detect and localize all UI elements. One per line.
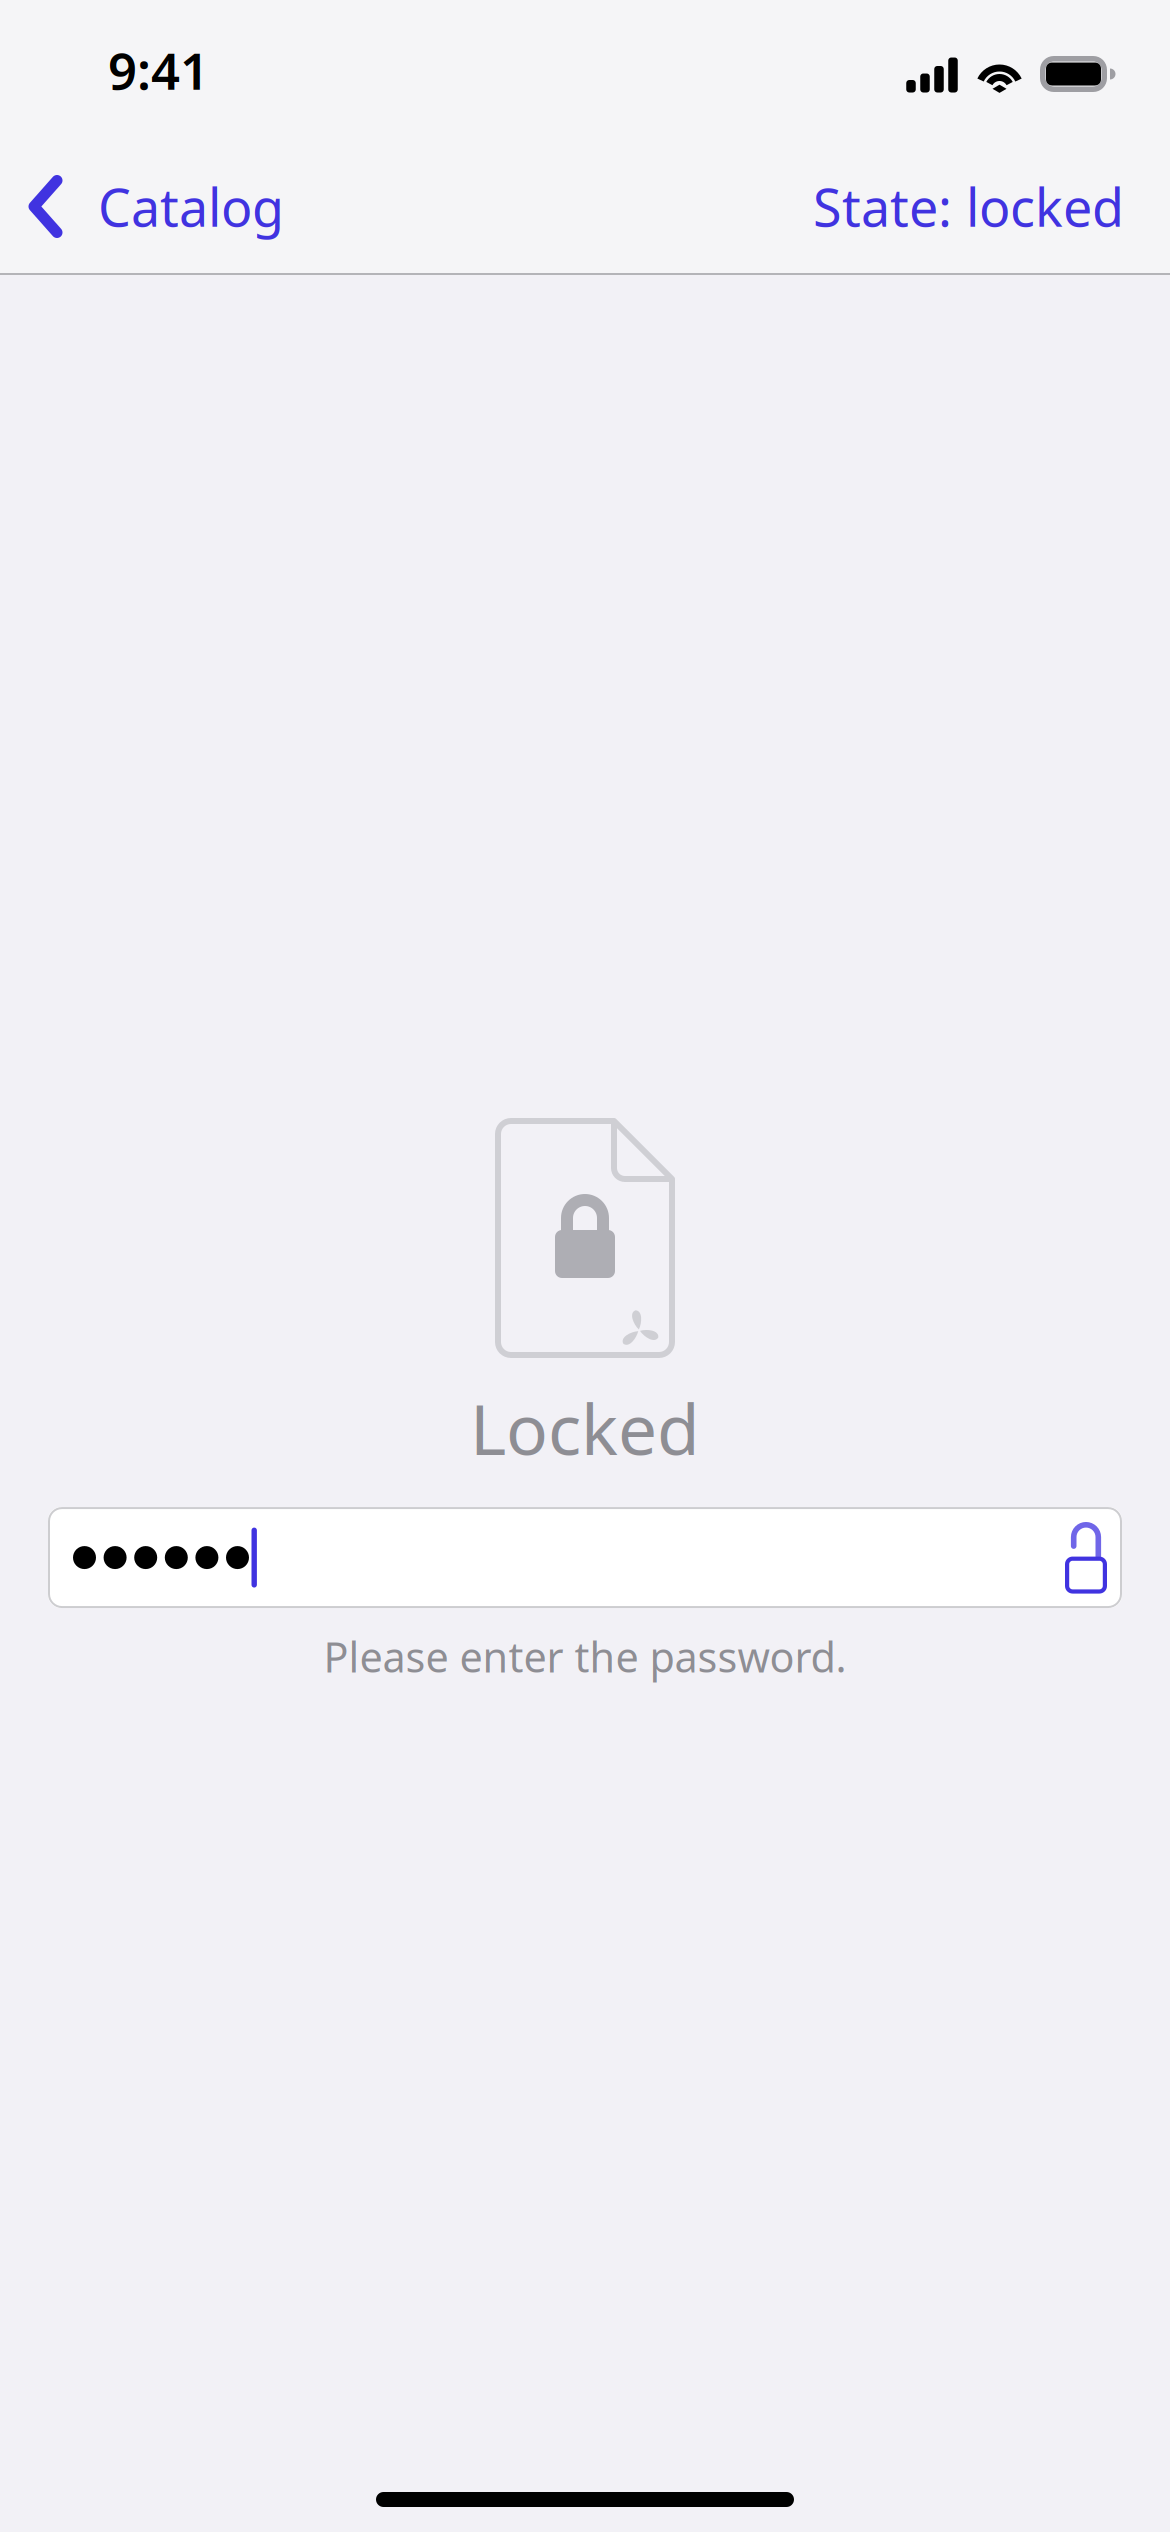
staticText: Please enter the password. [323, 1629, 846, 1684]
staticText: Locked [470, 1382, 700, 1474]
staticText: 9:41 [108, 36, 209, 104]
button[interactable]: Back to Catalog [0, 152, 306, 261]
staticText: State: locked [813, 172, 1124, 241]
button[interactable]: State: locked [767, 150, 1170, 263]
button[interactable]: Unlock document [1060, 1508, 1122, 1608]
button[interactable] [48, 1507, 1122, 1608]
staticText: Catalog [98, 172, 284, 241]
